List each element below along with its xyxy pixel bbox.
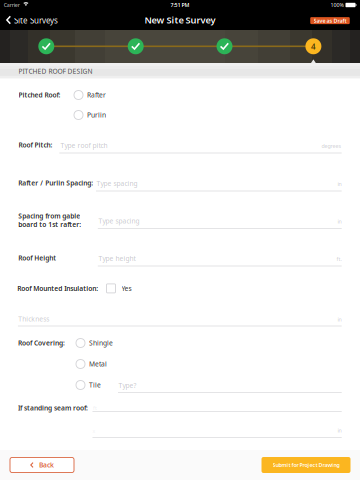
staticText: Rafter / Purlin Spacing:	[18, 179, 93, 187]
staticText: Carrier	[4, 1, 20, 9]
staticText: Tile	[89, 381, 101, 389]
staticText: Back	[39, 461, 54, 469]
staticText: If standing seam roof:	[18, 404, 88, 412]
staticText: 7:51 PM	[170, 1, 189, 9]
button[interactable]: Save as Draft	[310, 17, 350, 24]
staticText: Save as Draft	[313, 17, 346, 24]
button[interactable]: Purlin	[70, 108, 142, 121]
staticText: in	[337, 427, 341, 434]
staticText: degrees	[321, 142, 341, 150]
staticText: Rafter	[87, 91, 106, 99]
staticText: Type roof pitch	[60, 141, 107, 150]
staticText: ft	[93, 404, 97, 412]
staticText: Yes	[121, 284, 131, 293]
staticText: Metal	[89, 360, 107, 368]
button[interactable]: Submit for Project Drawing	[261, 457, 350, 473]
staticText: Site Surveys	[14, 15, 58, 26]
staticText: Roof Height	[18, 254, 56, 262]
staticText: Type spacing	[98, 217, 139, 225]
staticText: Type height	[98, 254, 135, 263]
button[interactable]: Roof mounted insulation — Yes	[104, 281, 118, 295]
staticText: ft.	[336, 255, 341, 263]
button[interactable]: Rafter	[70, 88, 142, 101]
staticText: Purlin	[87, 111, 106, 119]
staticText: Roof Pitch:	[19, 141, 53, 149]
staticText: Type?	[118, 381, 136, 390]
staticText: PITCHED ROOF DESIGN	[19, 67, 93, 76]
staticText: Roof Covering:	[18, 339, 65, 347]
button[interactable]: Back	[10, 457, 74, 472]
staticText: in	[337, 316, 341, 323]
staticText: Spacing from gable	[18, 212, 80, 220]
button[interactable]: Tile	[72, 378, 144, 391]
button[interactable]: Metal	[72, 357, 144, 370]
button[interactable]: Shingle	[72, 336, 144, 349]
staticText: 4	[311, 41, 316, 52]
staticText: in	[337, 218, 341, 225]
button[interactable]: Site Surveys	[0, 11, 62, 29]
staticText: Type spacing	[96, 179, 137, 188]
staticText: Shingle	[89, 339, 113, 347]
staticText: 100%	[331, 1, 344, 9]
staticText: board to 1st rafter:	[18, 220, 81, 229]
staticText: Submit for Project Drawing	[272, 461, 339, 469]
staticText: Thickness	[18, 315, 49, 323]
staticText: New Site Survey	[144, 14, 215, 26]
staticText: Pitched Roof:	[19, 91, 61, 99]
staticText: Roof Mounted Insulation:	[17, 284, 98, 293]
staticText: in	[337, 180, 341, 188]
